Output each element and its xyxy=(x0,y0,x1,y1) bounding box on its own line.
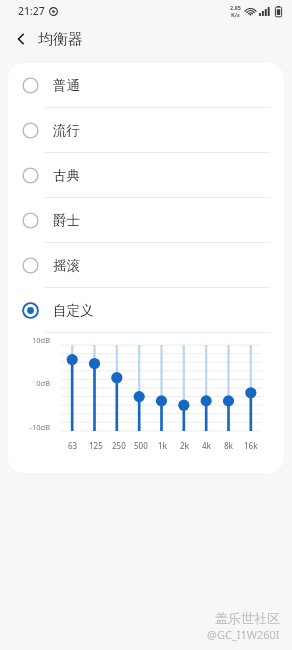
staticText: 普通 xyxy=(53,77,80,94)
staticText: 63 xyxy=(68,440,78,451)
staticText: 2k xyxy=(180,440,190,451)
staticText: @GC_I1W260I xyxy=(207,627,280,642)
staticText: 250 xyxy=(112,440,126,451)
staticText: 摇滚 xyxy=(53,257,80,274)
staticText: 均衡器 xyxy=(38,30,83,49)
button[interactable]: 古典 xyxy=(8,153,284,197)
staticText: 16k xyxy=(244,440,258,451)
staticText: 古典 xyxy=(53,167,80,184)
staticText: 21:27 xyxy=(18,4,45,18)
button[interactable]: 摇滚 xyxy=(8,243,284,287)
staticText: K/s xyxy=(231,11,240,18)
button[interactable]: 自定义 xyxy=(8,288,284,332)
button[interactable]: 普通 xyxy=(8,63,284,107)
staticText: -10dB xyxy=(18,422,50,432)
staticText: 盖乐世社区 xyxy=(215,610,280,626)
staticText: 2.85 xyxy=(230,4,241,11)
button[interactable]: Back xyxy=(8,26,34,52)
staticText: 8k xyxy=(224,440,234,451)
staticText: 10dB xyxy=(18,335,50,345)
staticText: 500 xyxy=(134,440,148,451)
staticText: 125 xyxy=(89,440,103,451)
staticText: 自定义 xyxy=(53,302,94,319)
button[interactable]: 爵士 xyxy=(8,198,284,242)
staticText: 4k xyxy=(202,440,212,451)
staticText: 0dB xyxy=(18,378,50,388)
staticText: 爵士 xyxy=(53,212,80,229)
staticText: 流行 xyxy=(53,122,80,139)
button[interactable]: 流行 xyxy=(8,108,284,152)
staticText: 1k xyxy=(158,440,168,451)
